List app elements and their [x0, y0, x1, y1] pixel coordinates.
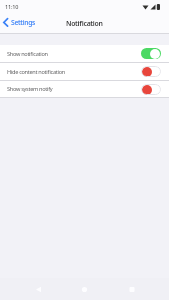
button[interactable]: Settings	[2, 16, 36, 29]
button[interactable]	[141, 66, 161, 77]
button[interactable]	[141, 48, 161, 59]
staticText: Hide content notification	[7, 68, 65, 76]
button[interactable]: Hide content notification	[0, 63, 169, 80]
staticText: 11:10	[5, 3, 19, 10]
button[interactable]: Show system notify	[0, 81, 169, 97]
button[interactable]: Show notification	[0, 45, 169, 62]
button[interactable]	[141, 84, 161, 95]
staticText: Notification	[66, 19, 103, 28]
staticText: Show system notify	[7, 85, 53, 93]
staticText: Show notification	[7, 50, 48, 58]
staticText: Settings	[11, 18, 36, 27]
